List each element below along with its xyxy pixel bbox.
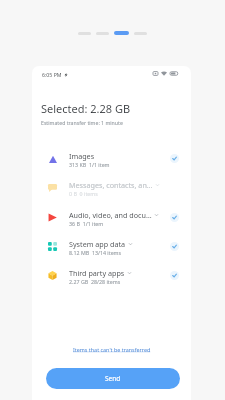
- staticText: 6:05 PM: [42, 71, 62, 78]
- staticText: 8.12 MB 13/14 items: [69, 249, 122, 256]
- button[interactable]: Send: [46, 368, 180, 389]
- staticText: 2.27 GB 28/28 items: [69, 278, 121, 285]
- staticText: Images: [69, 151, 95, 161]
- staticText: Audio, video, and docu…: [69, 210, 152, 220]
- staticText: 313 KB 1/1 item: [69, 161, 110, 168]
- button[interactable]: Items that can't be transferred: [73, 346, 151, 353]
- staticText: Messages, contacts, an…: [69, 180, 153, 190]
- staticText: Selected: 2.28 GB: [41, 101, 131, 116]
- staticText: Send: [105, 374, 121, 383]
- staticText: System app data: [69, 239, 126, 249]
- button[interactable]: Images: [32, 144, 191, 173]
- staticText: 0 B 0 items: [69, 190, 98, 197]
- staticText: Estimated transfer time: 1 minute: [41, 119, 123, 126]
- button[interactable]: Messages, contacts, an…: [32, 173, 191, 202]
- staticText: Third party apps: [69, 268, 125, 278]
- button[interactable]: Audio, video, and docu…: [32, 203, 191, 232]
- staticText: 36 B 1/1 item: [69, 220, 104, 227]
- button[interactable]: Third party apps: [32, 261, 191, 290]
- button[interactable]: System app data: [32, 232, 191, 261]
